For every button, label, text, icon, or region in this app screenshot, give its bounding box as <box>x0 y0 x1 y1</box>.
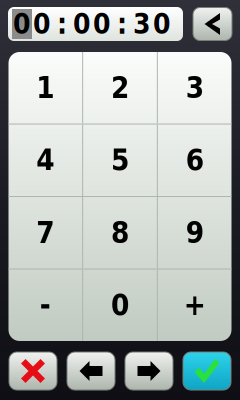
staticText: 0 <box>153 8 171 40</box>
button[interactable]: - <box>8 269 82 341</box>
button[interactable]: 3 <box>158 52 231 123</box>
staticText: 0 <box>73 8 91 40</box>
staticText: 0 <box>93 8 111 40</box>
button[interactable]: 9 <box>158 197 231 268</box>
staticText: + <box>184 288 206 322</box>
staticText: 3 <box>133 8 151 40</box>
button[interactable]: 6 <box>158 124 231 196</box>
staticText: 4 <box>36 143 54 177</box>
staticText: 0 <box>33 8 51 40</box>
button[interactable]: 2 <box>83 52 157 123</box>
button[interactable]: 0 <box>83 269 157 341</box>
button[interactable]: Confirm <box>183 352 231 390</box>
staticText: 0 <box>13 8 31 40</box>
button[interactable]: Next <box>125 352 173 390</box>
button[interactable]: + <box>158 269 231 341</box>
staticText: : <box>57 8 67 40</box>
staticText: 0 <box>111 288 129 322</box>
staticText: 9 <box>186 216 204 250</box>
staticText: 3 <box>186 71 204 105</box>
staticText: 5 <box>111 143 129 177</box>
button[interactable]: 1 <box>8 52 82 123</box>
staticText: 8 <box>111 216 129 250</box>
staticText: : <box>117 8 127 40</box>
staticText: 7 <box>36 216 54 250</box>
staticText: - <box>40 288 51 322</box>
button[interactable]: Previous <box>67 352 115 390</box>
button[interactable]: Delete <box>193 7 232 40</box>
button[interactable]: 5 <box>83 124 157 196</box>
staticText: 2 <box>111 71 129 105</box>
staticText: 1 <box>36 71 54 105</box>
button[interactable]: 7 <box>8 197 82 268</box>
staticText: 6 <box>186 143 204 177</box>
button[interactable]: 8 <box>83 197 157 268</box>
button[interactable]: Cancel <box>9 352 57 390</box>
button[interactable]: 4 <box>8 124 82 196</box>
